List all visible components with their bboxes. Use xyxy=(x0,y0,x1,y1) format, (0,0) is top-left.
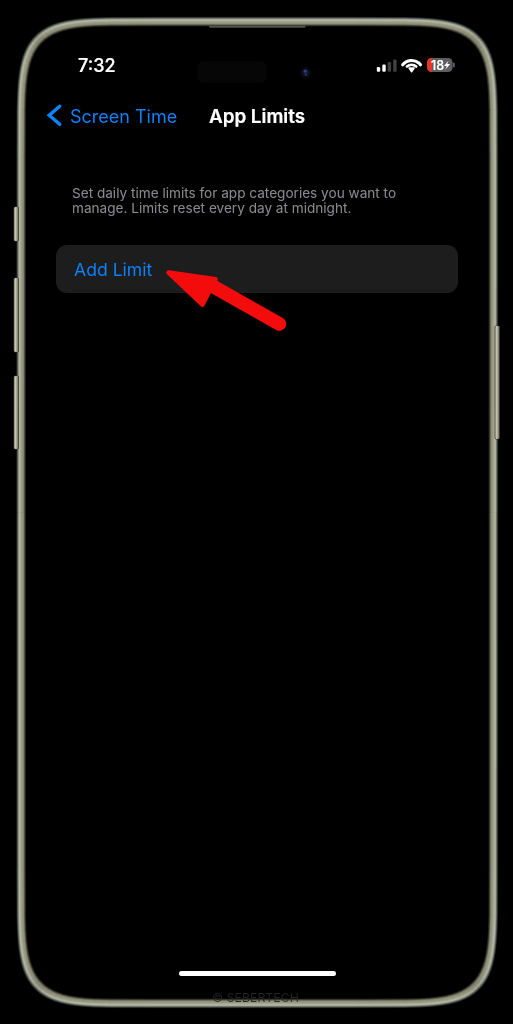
staticText: App Limits xyxy=(209,105,306,128)
staticText: Add Limit xyxy=(74,259,153,280)
staticText: 18 xyxy=(431,58,445,73)
button[interactable]: Add Limit xyxy=(56,245,458,293)
staticText: 7:32 xyxy=(78,55,116,77)
staticText: © SEBERTECH xyxy=(212,990,299,1005)
staticText: Screen Time xyxy=(70,106,178,128)
staticText: Set daily time limits for app categories… xyxy=(72,185,432,216)
button[interactable]: Back to Screen Time xyxy=(45,102,178,132)
